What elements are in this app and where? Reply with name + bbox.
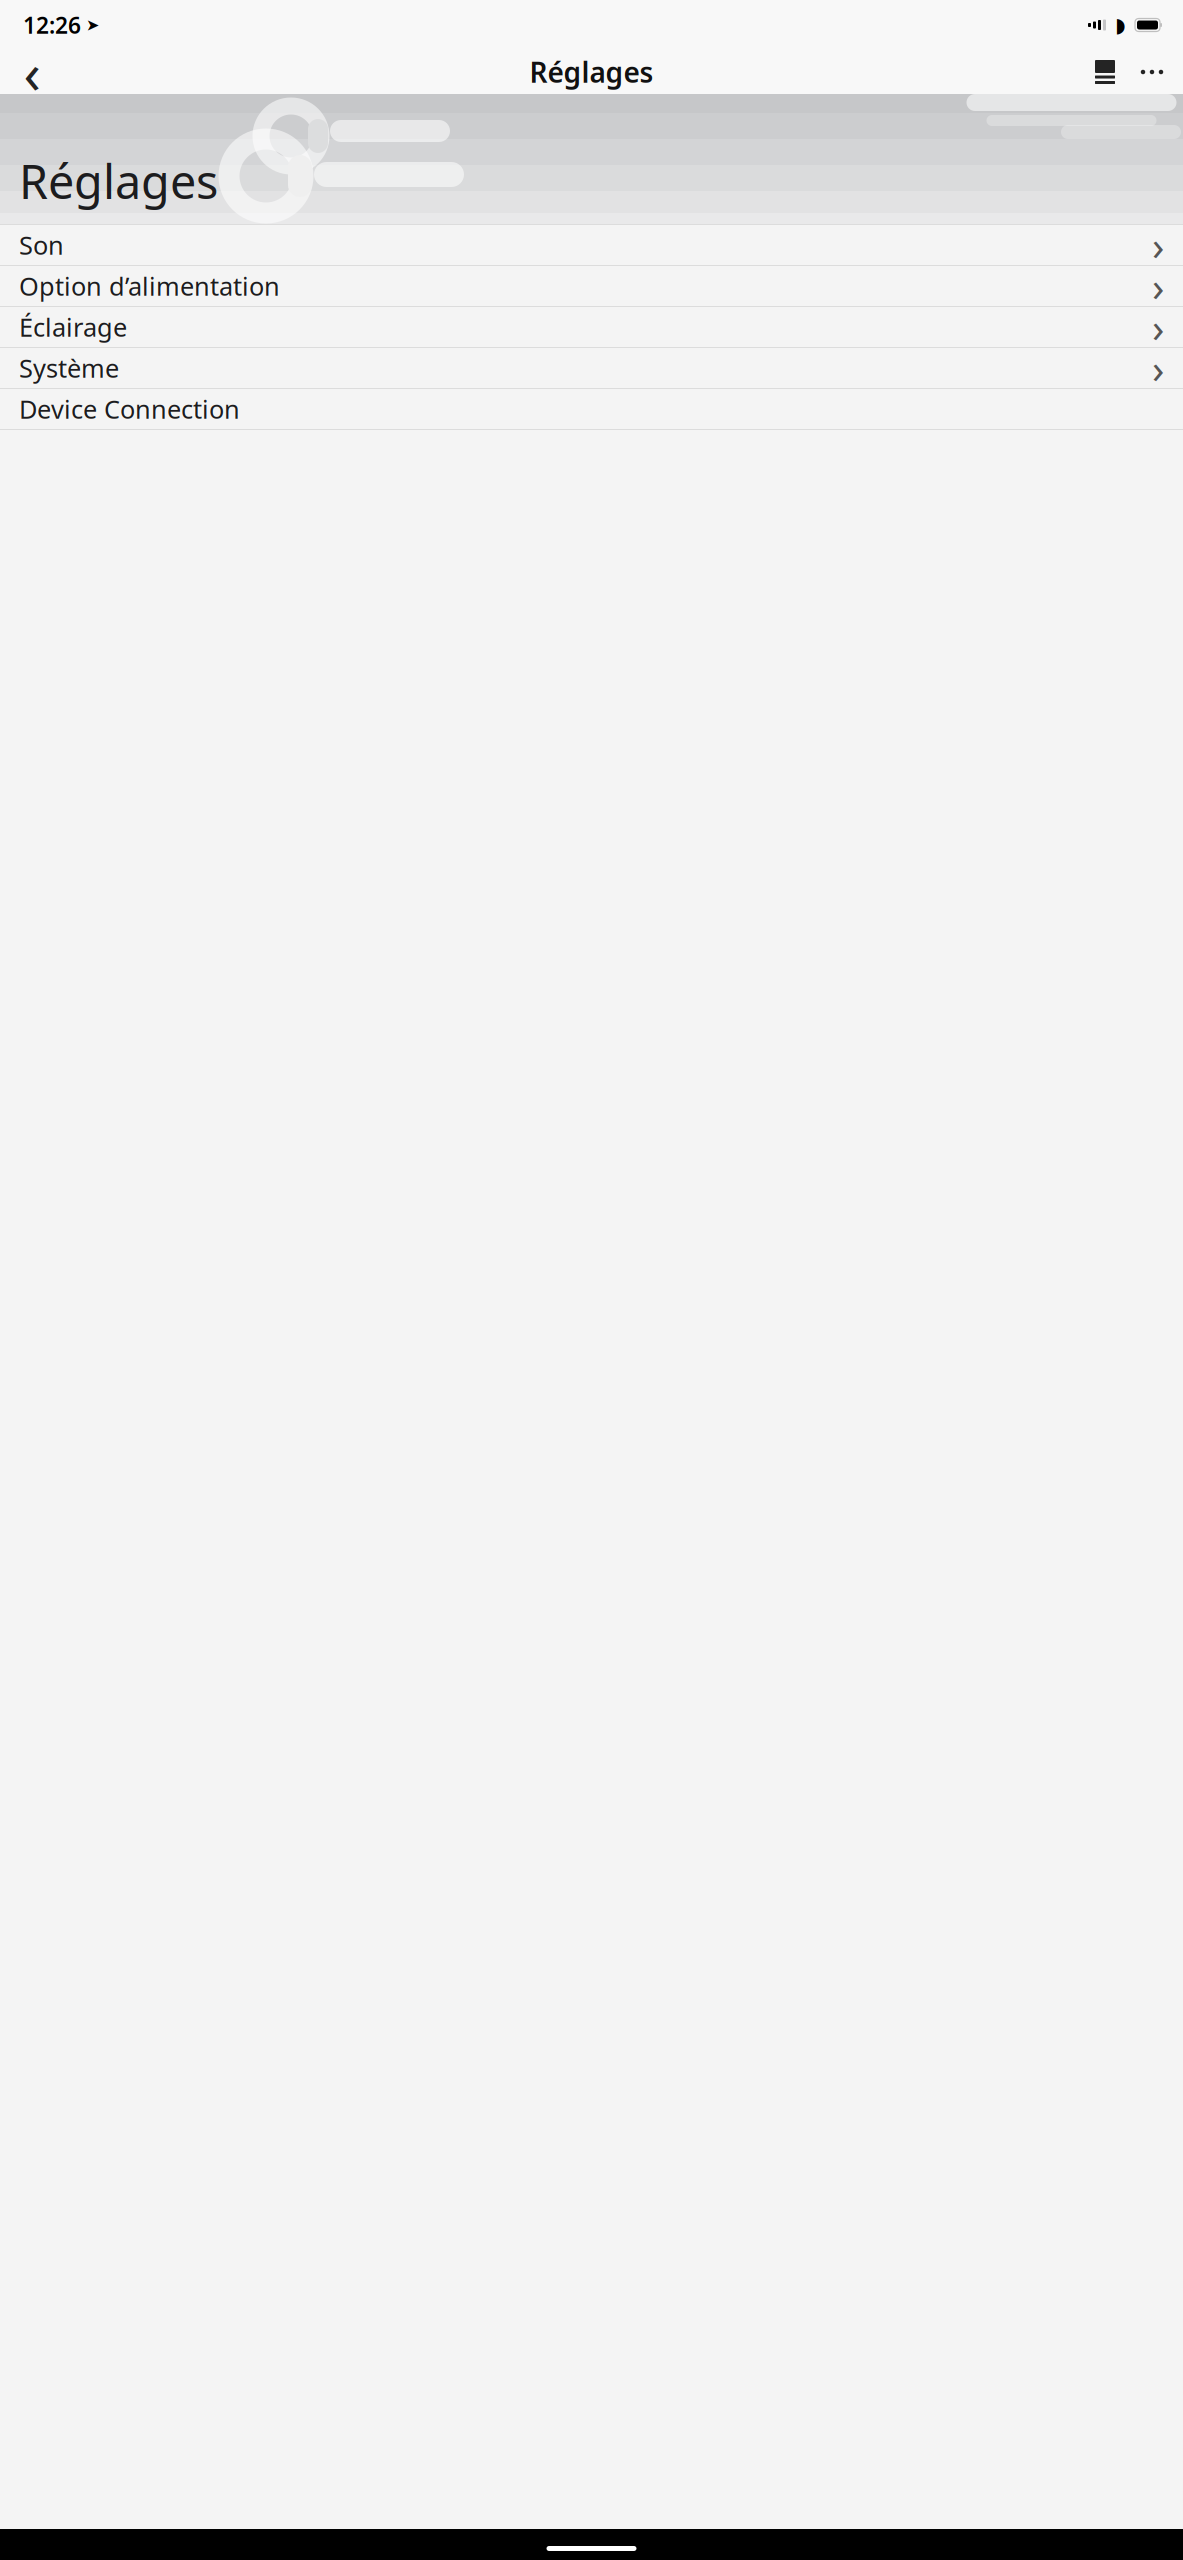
button[interactable]: Device Connection (0, 389, 1183, 429)
staticText: Réglages (529, 53, 653, 91)
button[interactable]: Son (0, 225, 1183, 265)
button[interactable]: Manual (1083, 50, 1127, 94)
staticText: ➤ (86, 16, 99, 34)
staticText: Device Connection (19, 392, 240, 426)
staticText: ◗ (1115, 14, 1126, 36)
staticText: Système (19, 351, 119, 385)
button[interactable]: Éclairage (0, 307, 1183, 347)
staticText: Option d’alimentation (19, 269, 280, 303)
staticText: ‹ (23, 35, 40, 109)
staticText: Réglages (19, 150, 218, 212)
staticText: Éclairage (19, 310, 127, 344)
staticText: › (1152, 300, 1164, 353)
staticText: Son (19, 228, 64, 262)
staticText: › (1152, 218, 1164, 271)
staticText: 12:26 (23, 10, 81, 40)
staticText: › (1152, 341, 1164, 394)
button[interactable]: Système (0, 348, 1183, 388)
button[interactable]: Back (6, 50, 58, 94)
button[interactable]: Option d’alimentation (0, 266, 1183, 306)
button[interactable]: More options (1127, 50, 1177, 94)
staticText: › (1152, 259, 1164, 312)
